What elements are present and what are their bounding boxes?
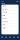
button[interactable]: Echo: [1, 17, 19, 20]
staticText: 9:41: [1, 0, 4, 2]
button[interactable]: Bravo: [1, 8, 19, 11]
button[interactable]: Foxtrot: [1, 20, 19, 23]
staticText: Bravo: [2, 8, 7, 10]
button[interactable]: Delta: [1, 14, 19, 17]
staticText: ▮▮: [17, 0, 19, 2]
button[interactable]: Tab: [16, 34, 20, 40]
button[interactable]: Tab: [8, 34, 12, 40]
staticText: Golf: [2, 24, 4, 26]
button[interactable]: Tab: [12, 34, 16, 40]
button[interactable]: Tab: [4, 34, 8, 40]
button[interactable]: Charlie: [1, 11, 19, 14]
staticText: Charlie: [2, 11, 7, 13]
staticText: Foxtrot: [2, 21, 7, 23]
button[interactable]: Hotel: [1, 26, 19, 29]
button[interactable]: Alpha: [1, 5, 19, 8]
staticText: Delta: [2, 15, 5, 16]
staticText: Echo: [2, 18, 6, 19]
button[interactable]: Golf: [1, 23, 19, 26]
staticText: Inbox: [1, 3, 5, 4]
staticText: Alpha: [2, 5, 6, 7]
staticText: Hotel: [2, 27, 5, 29]
button[interactable]: Tab: [0, 34, 4, 40]
